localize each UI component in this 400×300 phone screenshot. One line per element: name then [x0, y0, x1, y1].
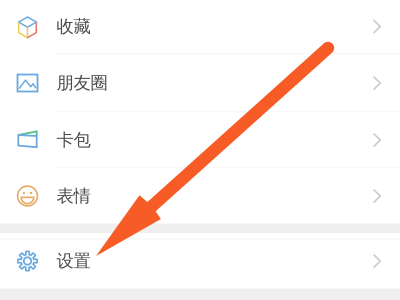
staticText: 设置 [56, 250, 90, 272]
staticText: 卡包 [56, 129, 90, 151]
button[interactable]: 朋友圈 [0, 54, 400, 112]
staticText: 表情 [56, 185, 90, 207]
button[interactable]: 收藏 [0, 0, 400, 54]
staticText: 收藏 [56, 16, 90, 37]
button[interactable]: 卡包 [0, 112, 400, 168]
staticText: 朋友圈 [56, 72, 107, 94]
button[interactable]: 表情 [0, 168, 400, 223]
button[interactable]: 设置 [0, 239, 400, 288]
